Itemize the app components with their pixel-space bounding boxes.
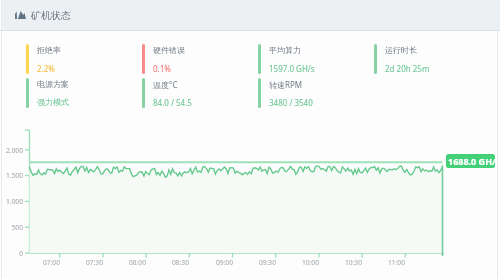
staticText: 08:00: [116, 258, 146, 267]
button[interactable]: 运行时长: [374, 44, 430, 74]
staticText: 3480 / 3540: [269, 97, 313, 108]
staticText: 09:00: [203, 258, 233, 267]
button[interactable]: 电源方案: [26, 78, 69, 108]
staticText: 运行时长: [385, 45, 417, 55]
staticText: 500: [0, 223, 23, 232]
staticText: 1688.0 GH/s: [448, 155, 495, 167]
staticText: 07:00: [30, 258, 60, 267]
staticText: 08:30: [159, 258, 189, 267]
staticText: 转速RPM: [269, 79, 303, 90]
staticText: 11:00: [375, 258, 405, 267]
button[interactable]: 硬件错误: [142, 44, 185, 74]
button[interactable]: 转速RPM: [258, 78, 313, 108]
staticText: 0.1%: [153, 63, 171, 74]
staticText: 1.500: [0, 171, 23, 180]
staticText: 平均算力: [269, 45, 301, 55]
staticText: 拒绝率: [37, 45, 61, 55]
button[interactable]: 平均算力: [258, 44, 315, 74]
button[interactable]: 温度°C: [142, 78, 192, 108]
staticText: 2.000: [0, 146, 23, 155]
staticText: 矿机状态: [31, 9, 71, 22]
staticText: 07:30: [73, 258, 103, 267]
staticText: 硬件错误: [153, 45, 185, 55]
staticText: 温度°C: [153, 79, 178, 90]
button[interactable]: 1688.0 GH/s: [446, 154, 495, 168]
staticText: 84.0 / 54.5: [153, 97, 192, 108]
staticText: 电源方案: [37, 79, 69, 89]
staticText: 1.000: [0, 197, 23, 206]
staticText: 09:30: [246, 258, 276, 267]
staticText: 强力模式: [37, 97, 69, 107]
staticText: 2.2%: [37, 63, 55, 74]
button[interactable]: 矿机状态: [2, 0, 500, 30]
staticText: 10:30: [332, 258, 362, 267]
button[interactable]: 拒绝率: [26, 44, 61, 74]
staticText: 10:00: [289, 258, 319, 267]
staticText: 0: [0, 249, 23, 258]
staticText: 2d 20h 25m: [385, 63, 430, 74]
staticText: 1597.0 GH/s: [269, 63, 315, 74]
